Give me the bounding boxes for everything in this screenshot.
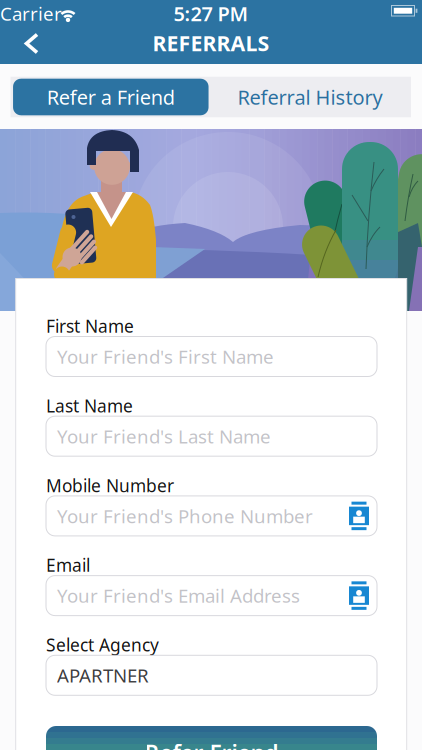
staticText: Last Name	[46, 394, 133, 417]
staticText: First Name	[46, 314, 134, 337]
staticText: Your Friend's First Name	[57, 344, 274, 369]
button[interactable]: Refer Friend	[46, 726, 377, 750]
staticText: REFERRALS	[152, 29, 269, 57]
button[interactable]: Back	[16, 28, 46, 58]
button[interactable]: APARTNER	[46, 655, 377, 695]
staticText: Carrier	[0, 1, 62, 26]
button[interactable]: Choose from contacts	[349, 581, 369, 610]
button[interactable]: Your Friend's Email Address	[46, 576, 377, 616]
staticText: Email	[46, 554, 90, 577]
button[interactable]: Your Friend's Last Name	[46, 416, 377, 456]
staticText: Refer Friend	[144, 738, 278, 750]
button[interactable]: Your Friend's First Name	[46, 336, 377, 376]
button[interactable]: Referral History	[212, 79, 407, 115]
button[interactable]: Your Friend's Phone Number	[46, 496, 377, 536]
staticText: Your Friend's Email Address	[57, 583, 300, 608]
staticText: Mobile Number	[46, 474, 174, 497]
button[interactable]: Refer a Friend	[13, 79, 208, 115]
staticText: Referral History	[237, 84, 382, 110]
staticText: 5:27 PM	[173, 0, 248, 27]
button[interactable]: Choose from contacts	[349, 502, 369, 530]
staticText: Your Friend's Phone Number	[57, 503, 313, 528]
staticText: Select Agency	[46, 633, 159, 656]
staticText: Refer a Friend	[47, 84, 175, 110]
staticText: Your Friend's Last Name	[57, 424, 271, 449]
staticText: APARTNER	[57, 663, 149, 688]
